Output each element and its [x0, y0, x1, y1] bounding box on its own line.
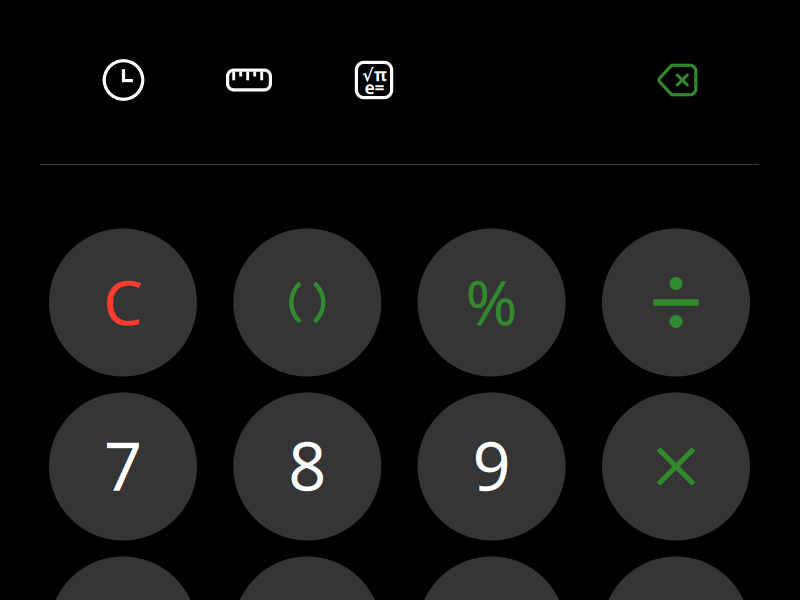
button[interactable]: Divide	[602, 228, 750, 376]
button[interactable]: %	[418, 228, 566, 376]
button[interactable]: 6	[418, 556, 566, 600]
button[interactable]: 7	[49, 392, 197, 540]
button[interactable]: Multiply	[602, 392, 750, 540]
button[interactable]: 8	[233, 392, 381, 540]
button[interactable]: Subtract	[602, 556, 750, 600]
staticText: 9	[473, 421, 511, 509]
button[interactable]: Delete	[653, 60, 701, 100]
staticText: √π	[362, 63, 387, 86]
staticText: e=	[364, 76, 384, 99]
staticText: 7	[104, 421, 142, 509]
button[interactable]: Parentheses	[233, 228, 381, 376]
button[interactable]: 5	[233, 556, 381, 600]
staticText: %	[466, 259, 518, 343]
button[interactable]: Unit conversion	[224, 65, 274, 95]
button[interactable]: History	[101, 58, 145, 102]
button[interactable]: 9	[418, 392, 566, 540]
button[interactable]: Scientific functions	[352, 58, 396, 102]
staticText: 8	[288, 421, 326, 509]
staticText: C	[103, 259, 143, 343]
button[interactable]: C	[49, 228, 197, 376]
button[interactable]: 4	[49, 556, 197, 600]
